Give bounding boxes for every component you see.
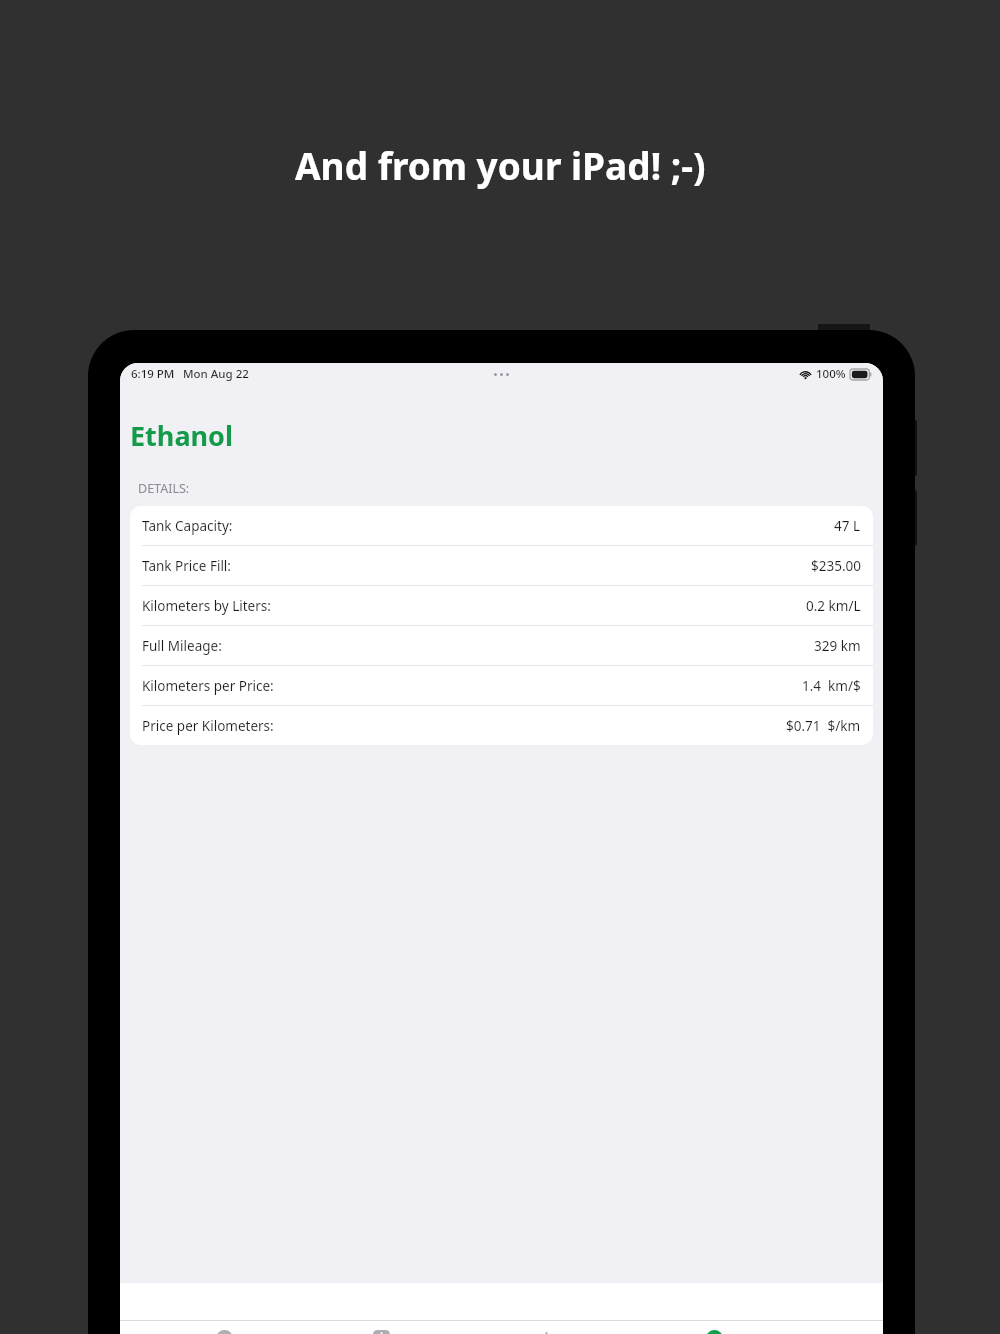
button[interactable]: Tank Price Fill: <box>130 546 873 585</box>
other: Primary <box>538 1330 555 1334</box>
staticText: Kilometers per Price: <box>142 677 274 695</box>
staticText: Ethanol <box>130 417 234 454</box>
staticText: Price per Kilometers: <box>142 717 274 735</box>
staticText: 0.2 km/L <box>806 597 861 615</box>
staticText: 1.4 km/$ <box>802 677 861 695</box>
button[interactable]: Price per Kilometers: <box>130 706 873 745</box>
staticText: 6:19 PM <box>131 366 175 382</box>
other: Prices <box>373 1330 390 1334</box>
staticText: Kilometers by Liters: <box>142 597 271 615</box>
staticText: Tank Price Fill: <box>142 557 231 575</box>
staticText: 47 L <box>834 517 861 535</box>
button[interactable]: Kilometers per Price: <box>130 666 873 705</box>
staticText: $235.00 <box>811 557 861 575</box>
staticText: $0.71 $/km <box>786 717 861 735</box>
staticText: Mon Aug 22 <box>183 366 249 382</box>
staticText: DETAILS: <box>138 480 190 497</box>
staticText: Full Mileage: <box>142 637 222 655</box>
other: Fuel <box>216 1330 233 1334</box>
staticText: And from your iPad! ;-) <box>295 140 706 190</box>
button[interactable]: Kilometers by Liters: <box>130 586 873 625</box>
button[interactable]: Secondary <box>704 1328 790 1334</box>
button[interactable]: Primary <box>536 1328 608 1334</box>
staticText: Tank Capacity: <box>142 517 233 535</box>
button[interactable]: Tank Capacity: <box>130 506 873 545</box>
button[interactable]: Fuel <box>214 1328 265 1334</box>
staticText: 100% <box>816 366 846 382</box>
button[interactable]: Full Mileage: <box>130 626 873 665</box>
button[interactable]: Prices <box>371 1328 432 1334</box>
other: Secondary <box>706 1330 723 1334</box>
staticText: 329 km <box>814 637 861 655</box>
